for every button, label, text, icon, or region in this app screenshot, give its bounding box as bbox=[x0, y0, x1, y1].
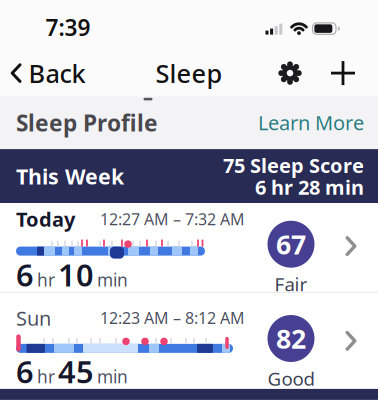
staticText: 6 bbox=[16, 351, 34, 392]
staticText: 10 bbox=[58, 254, 94, 295]
staticText: hr bbox=[37, 365, 55, 388]
button[interactable]: Learn More bbox=[258, 109, 364, 136]
staticText: This Week bbox=[16, 162, 124, 190]
staticText: Sleep Profile bbox=[16, 107, 158, 138]
staticText: Back bbox=[28, 56, 85, 90]
staticText: 6 bbox=[16, 254, 34, 295]
button[interactable]: Add bbox=[331, 61, 355, 85]
staticText: Sleep bbox=[155, 56, 222, 90]
staticText: Learn More bbox=[258, 109, 364, 136]
button[interactable]: Sun bbox=[0, 293, 378, 389]
staticText: 82 bbox=[276, 321, 306, 356]
staticText: Sun bbox=[16, 305, 51, 331]
staticText: 75 Sleep Score bbox=[223, 152, 364, 179]
staticText: Today bbox=[16, 206, 75, 232]
staticText: hr bbox=[37, 268, 55, 291]
staticText: 12:23 AM – 8:12 AM bbox=[100, 307, 245, 328]
staticText: Good bbox=[267, 366, 314, 391]
staticText: 45 bbox=[58, 351, 94, 392]
button[interactable]: Settings bbox=[278, 61, 302, 85]
staticText: min bbox=[97, 268, 128, 291]
staticText: 67 bbox=[276, 226, 306, 262]
staticText: 12:27 AM – 7:32 AM bbox=[100, 208, 245, 230]
button[interactable]: Back bbox=[10, 56, 85, 90]
staticText: 7:39 bbox=[45, 12, 90, 42]
staticText: Fair bbox=[274, 272, 307, 296]
staticText: 6 hr 28 min bbox=[255, 174, 364, 200]
staticText: min bbox=[97, 365, 128, 388]
button[interactable]: Today bbox=[0, 203, 378, 292]
